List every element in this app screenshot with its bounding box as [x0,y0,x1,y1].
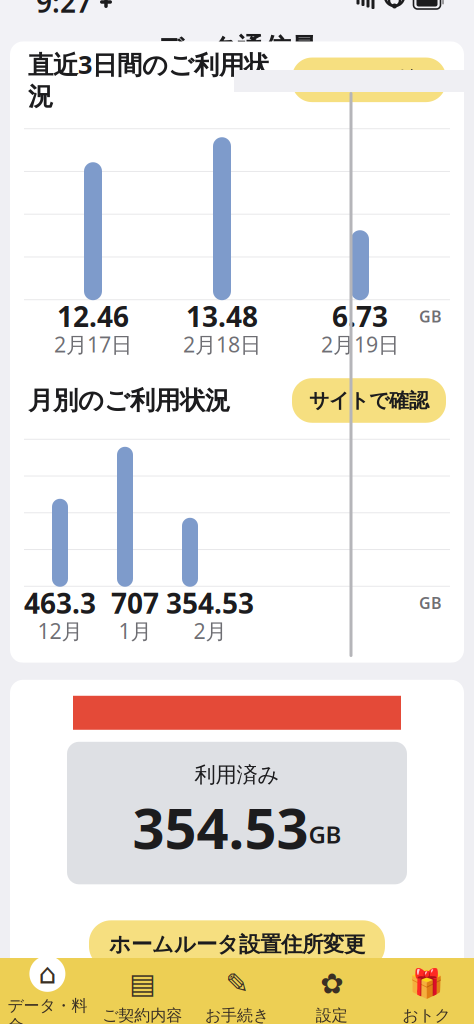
button[interactable]: ✿ [284,965,379,1024]
staticText: 設定 [316,1006,348,1024]
staticText: GB [419,306,442,327]
staticText: ‹ [21,18,35,78]
staticText: 9:27 [36,0,92,21]
button[interactable]: 戻る [6,26,50,70]
button[interactable]: サイトで確認 [292,378,446,423]
staticText: ▤ [129,968,155,1000]
staticText: 2月18日 [183,330,261,358]
staticText: サイトで確認 [309,388,429,413]
staticText: 利用済み [194,762,279,788]
staticText: 12月 [37,617,82,645]
staticText: ⌂ [38,958,56,990]
staticText: 12.46 [57,298,129,335]
staticText: GB [419,592,442,613]
staticText: 354.53 [166,584,254,621]
staticText: 🎁 [409,968,444,1000]
staticText: 2月19日 [321,330,399,358]
staticText: GB [308,818,341,850]
staticText: 直近3日間のご利用状況 [28,47,269,112]
button[interactable]: ⌂ [0,965,95,1024]
staticText: 13.48 [186,298,258,335]
staticText: ホームルータ設置住所変更 [109,931,365,957]
staticText: 354.53 [132,790,308,864]
staticText: データ通信量 [156,32,318,64]
staticText: データ・料金 [7,996,87,1024]
staticText: 2月 [193,617,226,645]
staticText: ご契約内容 [102,1006,182,1024]
staticText: ✿ [320,968,343,1000]
staticText: 1月 [118,617,151,645]
staticText: 707 [111,584,159,621]
staticText: ✎ [225,968,248,1000]
button[interactable]: ▤ [95,965,190,1024]
staticText: 2月17日 [54,330,132,358]
staticText: 463.3 [24,584,96,621]
button[interactable]: サイトで確認 [292,57,446,102]
staticText: 月別のご利用状況 [28,385,230,416]
button[interactable]: ホームルータ設置住所変更 [89,920,385,968]
staticText: サイトで確認 [309,67,429,92]
staticText: お手続き [205,1006,269,1024]
button[interactable]: ✎ [190,965,284,1024]
button[interactable]: 🎁 [379,965,474,1024]
staticText: おトク [403,1006,451,1024]
staticText: 6.73 [332,298,388,335]
